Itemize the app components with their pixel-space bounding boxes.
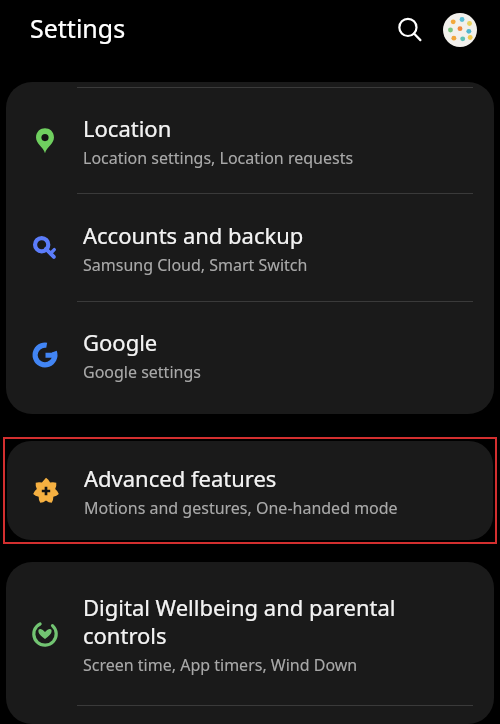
staticText: Screen time, App timers, Wind Down [83, 654, 358, 676]
staticText: Location settings, Location requests [83, 147, 354, 169]
button[interactable]: Advanced features [7, 441, 493, 540]
staticText: Digital Wellbeing and parental controls [83, 592, 480, 650]
button[interactable]: Account [438, 8, 482, 52]
staticText: Settings [30, 11, 126, 45]
staticText: Samsung Cloud, Smart Switch [83, 254, 308, 276]
staticText: Google settings [83, 361, 201, 383]
button[interactable]: Location [6, 88, 494, 193]
staticText: Advanced features [84, 463, 277, 493]
button[interactable]: Accounts and backup [6, 194, 494, 301]
button[interactable]: Google [6, 302, 494, 407]
button[interactable]: Digital Wellbeing and parental controls [6, 562, 494, 705]
staticText: Location [83, 113, 172, 143]
staticText: Google [83, 327, 158, 357]
staticText: Motions and gestures, One-handed mode [84, 497, 398, 519]
staticText: Accounts and backup [83, 220, 304, 250]
button[interactable]: Search [388, 8, 432, 52]
